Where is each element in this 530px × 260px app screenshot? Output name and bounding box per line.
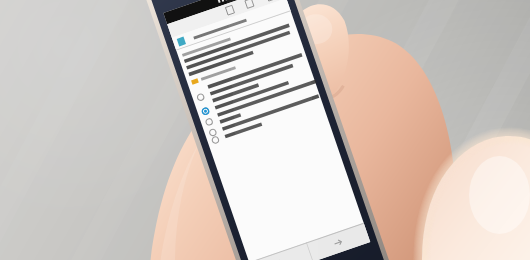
button[interactable]: Survey question options <box>0 0 530 260</box>
